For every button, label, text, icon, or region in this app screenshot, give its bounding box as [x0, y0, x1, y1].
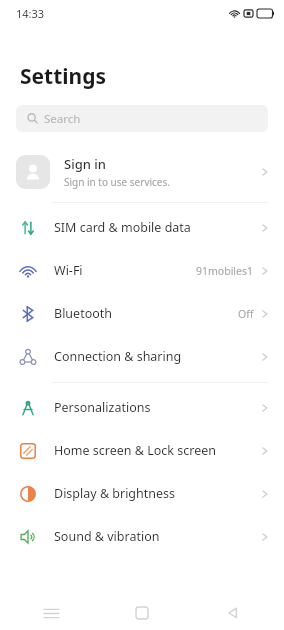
- staticText: Sign in: [64, 155, 106, 173]
- button[interactable]: Personalizations: [0, 386, 284, 429]
- button[interactable]: Bluetooth: [0, 292, 284, 335]
- staticText: Display & brightness: [54, 485, 176, 502]
- button[interactable]: Sound & vibration: [0, 515, 284, 558]
- staticText: 14:33: [16, 6, 45, 21]
- button[interactable]: Connection & sharing: [0, 335, 284, 378]
- button[interactable]: Recent apps: [11, 596, 91, 630]
- button[interactable]: Back: [193, 596, 273, 630]
- staticText: Connection & sharing: [54, 348, 182, 365]
- staticText: Off: [238, 307, 254, 321]
- button[interactable]: Home screen & Lock screen: [0, 429, 284, 472]
- staticText: Personalizations: [54, 399, 151, 416]
- button[interactable]: Home: [102, 596, 182, 630]
- staticText: Sign in to use services.: [64, 175, 170, 189]
- staticText: Bluetooth: [54, 305, 113, 322]
- button[interactable]: Display & brightness: [0, 472, 284, 515]
- button[interactable]: SIM card & mobile data: [0, 206, 284, 249]
- staticText: 91mobiles1: [196, 264, 254, 278]
- button[interactable]: Search: [16, 105, 268, 132]
- staticText: Sound & vibration: [54, 528, 160, 545]
- staticText: SIM card & mobile data: [54, 219, 191, 236]
- staticText: Settings: [20, 62, 107, 91]
- staticText: Home screen & Lock screen: [54, 442, 216, 459]
- staticText: Search: [44, 111, 81, 127]
- button[interactable]: Wi-Fi: [0, 249, 284, 292]
- button[interactable]: Sign in: [0, 146, 284, 198]
- staticText: Wi-Fi: [54, 262, 83, 279]
